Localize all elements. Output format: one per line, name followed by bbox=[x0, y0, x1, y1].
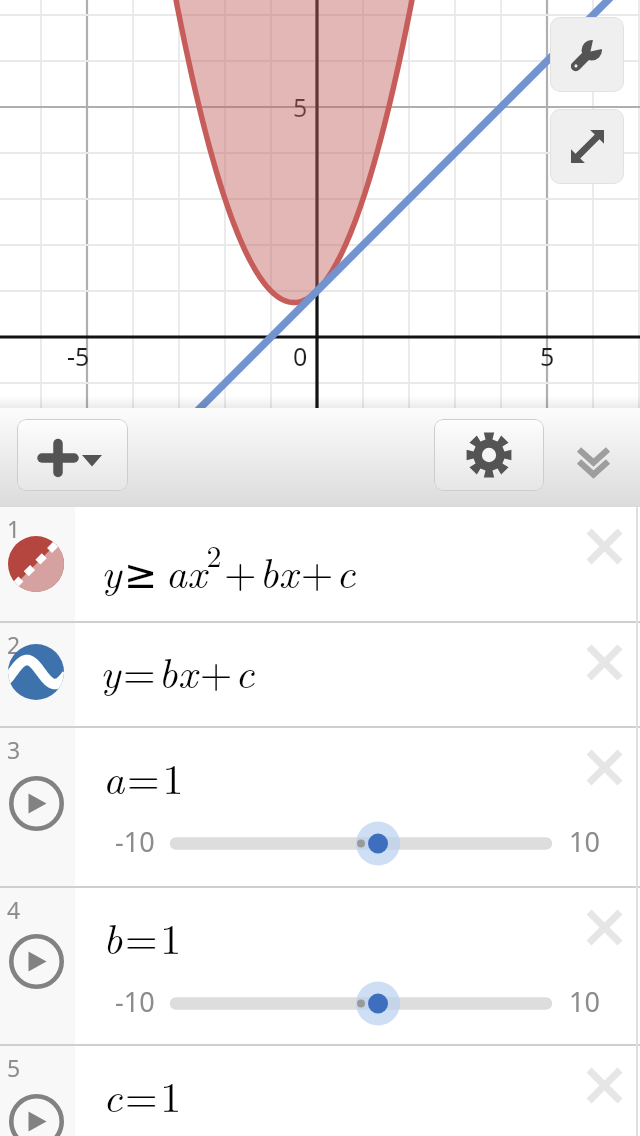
button[interactable]: Toggle curve bbox=[8, 536, 64, 592]
button[interactable]: Animate bbox=[8, 933, 64, 989]
staticText: a = 1 bbox=[103, 747, 184, 807]
staticText: y = bx + c bbox=[100, 641, 255, 701]
button[interactable]: Delete expression bbox=[572, 630, 636, 694]
staticText: 2 bbox=[7, 629, 21, 660]
button[interactable]: Graph settings bbox=[550, 17, 624, 92]
button[interactable]: Expand graph bbox=[550, 109, 624, 184]
button[interactable]: Animate bbox=[8, 1093, 64, 1136]
button[interactable]: Delete expression bbox=[572, 514, 636, 578]
staticText: 0 bbox=[293, 339, 308, 373]
button[interactable]: Delete expression bbox=[572, 735, 636, 799]
button[interactable]: Delete expression bbox=[572, 895, 636, 959]
button[interactable]: Toggle curve bbox=[8, 644, 64, 700]
staticText: -5 bbox=[67, 339, 90, 373]
button[interactable]: 4 bbox=[0, 888, 640, 1044]
staticText: 5 bbox=[540, 339, 555, 373]
button[interactable]: Settings bbox=[434, 419, 544, 491]
button[interactable]: Collapse bbox=[562, 419, 624, 491]
staticText: c = 1 bbox=[103, 1065, 182, 1125]
button[interactable]: 1 bbox=[0, 507, 640, 621]
button[interactable]: 5 bbox=[0, 1046, 640, 1136]
button[interactable]: 3 bbox=[0, 728, 640, 886]
staticText: 10 bbox=[569, 983, 600, 1020]
staticText: 5 bbox=[293, 90, 308, 124]
staticText: 1 bbox=[7, 513, 21, 544]
staticText: -10 bbox=[115, 983, 155, 1020]
staticText: y ≥ ax2 + bx + c bbox=[101, 533, 356, 600]
staticText: -10 bbox=[115, 823, 155, 860]
staticText: 3 bbox=[7, 734, 21, 765]
button[interactable]: Delete expression bbox=[572, 1053, 636, 1117]
staticText: 4 bbox=[7, 894, 21, 925]
button[interactable]: 2 bbox=[0, 623, 640, 726]
staticText: 5 bbox=[7, 1052, 21, 1083]
staticText: b = 1 bbox=[103, 907, 182, 967]
button[interactable]: Animate bbox=[8, 775, 64, 831]
staticText: 10 bbox=[569, 823, 600, 860]
button[interactable]: Add expression bbox=[17, 419, 128, 491]
